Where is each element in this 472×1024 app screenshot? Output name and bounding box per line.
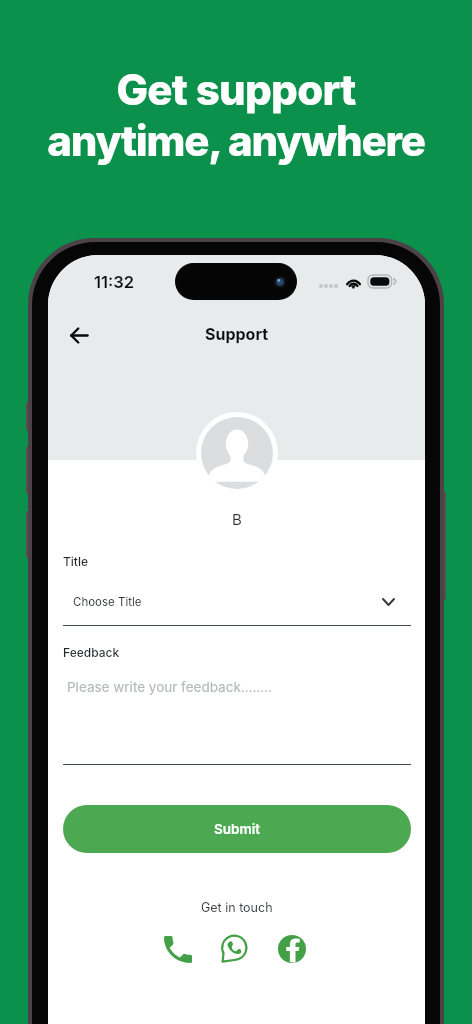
button[interactable]: Choose Title: [63, 589, 411, 615]
staticText: Support: [205, 324, 269, 343]
button[interactable]: Back: [62, 318, 96, 352]
staticText: Get in touch: [201, 900, 273, 915]
staticText: Please write your feedback........: [67, 679, 272, 695]
button[interactable]: Facebook: [275, 934, 309, 964]
staticText: Title: [63, 554, 89, 569]
staticText: Submit: [214, 821, 260, 837]
staticText: B: [232, 510, 242, 528]
staticText: anytime, anywhere: [47, 115, 425, 166]
staticText: Choose Title: [73, 595, 142, 609]
staticText: Get support: [116, 64, 356, 115]
button[interactable]: Submit: [63, 805, 411, 853]
staticText: Feedback: [63, 645, 120, 660]
button[interactable]: WhatsApp: [218, 934, 252, 964]
staticText: 11:32: [94, 272, 134, 292]
button[interactable]: Call: [161, 934, 195, 964]
